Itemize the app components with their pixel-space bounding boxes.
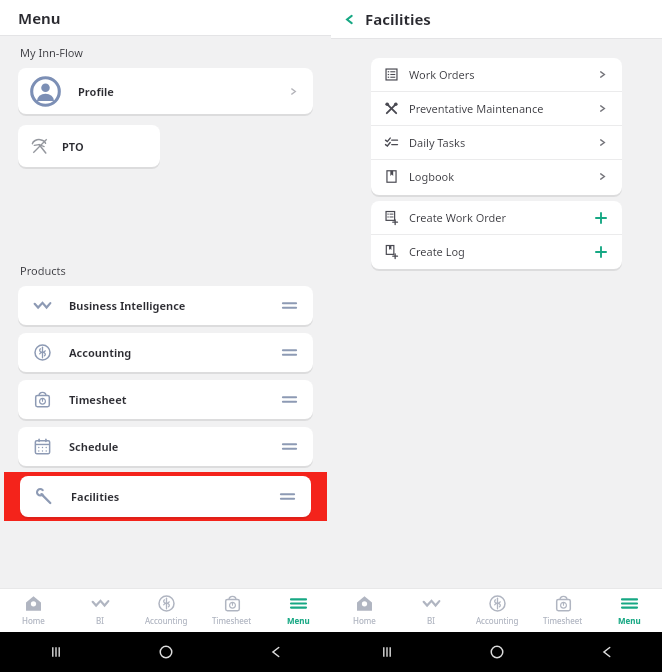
staticText: Facilities <box>71 489 120 504</box>
staticText: BI <box>427 615 435 626</box>
button[interactable]: Home <box>331 589 398 632</box>
button[interactable]: Business Intelligence <box>18 286 313 325</box>
other: Recents <box>48 644 64 660</box>
button[interactable]: Timesheet <box>530 589 596 632</box>
staticText: Accounting <box>476 615 519 626</box>
button[interactable]: Daily Tasks <box>371 126 622 159</box>
staticText: Logbook <box>409 169 455 184</box>
staticText: BI <box>96 615 104 626</box>
staticText: Menu <box>287 615 310 626</box>
button[interactable]: Schedule <box>18 427 313 466</box>
staticText: Home <box>353 615 376 626</box>
button[interactable]: Menu <box>265 589 331 632</box>
other: Home <box>158 644 174 660</box>
button[interactable]: Home <box>0 589 67 632</box>
staticText: Work Orders <box>409 67 475 82</box>
button[interactable]: Preventative Maintenance <box>371 92 622 125</box>
other: Recents <box>379 644 395 660</box>
button[interactable]: Logbook <box>371 160 622 193</box>
staticText: Accounting <box>69 345 132 360</box>
staticText: Menu <box>18 8 61 28</box>
staticText: Products <box>20 263 66 278</box>
staticText: Facilities <box>365 9 431 29</box>
button[interactable]: Accounting <box>133 589 199 632</box>
other: Add <box>594 211 608 225</box>
button[interactable]: Timesheet <box>199 589 265 632</box>
staticText: Schedule <box>69 439 119 454</box>
staticText: Daily Tasks <box>409 135 466 150</box>
button[interactable]: Back <box>331 4 441 34</box>
other: Add <box>594 245 608 259</box>
staticText: PTO <box>62 139 84 154</box>
staticText: Timesheet <box>543 615 583 626</box>
staticText: Home <box>22 615 45 626</box>
other: Back <box>268 644 284 660</box>
button[interactable]: Timesheet <box>18 380 313 419</box>
staticText: Create Log <box>409 244 465 259</box>
staticText: Preventative Maintenance <box>409 101 544 116</box>
button[interactable]: BI <box>398 589 464 632</box>
staticText: Create Work Order <box>409 210 507 225</box>
staticText: Menu <box>618 615 641 626</box>
staticText: Timesheet <box>212 615 252 626</box>
staticText: Profile <box>78 84 114 99</box>
button[interactable]: Profile <box>18 68 313 114</box>
staticText: Timesheet <box>69 392 127 407</box>
button[interactable]: Accounting <box>18 333 313 372</box>
button[interactable]: Menu <box>596 589 662 632</box>
button[interactable]: PTO <box>18 125 160 167</box>
staticText: Accounting <box>145 615 188 626</box>
button[interactable]: Accounting <box>464 589 530 632</box>
button[interactable]: Work Orders <box>371 58 622 91</box>
button[interactable]: BI <box>67 589 133 632</box>
button[interactable]: Create Work Order <box>371 201 622 234</box>
other: Home <box>489 644 505 660</box>
other: Back <box>343 13 356 26</box>
button[interactable]: Create Log <box>371 235 622 268</box>
staticText: Business Intelligence <box>69 298 186 313</box>
staticText: My Inn-Flow <box>20 45 83 60</box>
button[interactable]: Facilities <box>20 476 311 517</box>
other: Back <box>599 644 615 660</box>
